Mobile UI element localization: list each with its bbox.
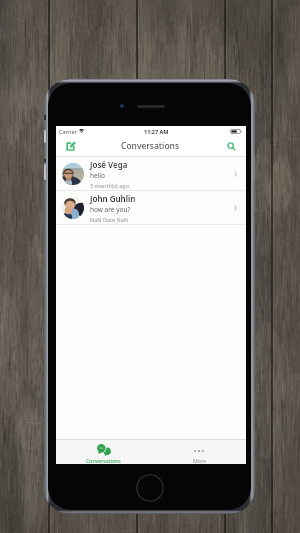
staticText: Carrier — [59, 128, 77, 135]
button[interactable]: Search — [223, 138, 239, 154]
button[interactable]: More — [151, 440, 246, 464]
button[interactable]: José Vega — [56, 157, 246, 191]
staticText: Conversations — [86, 457, 121, 464]
staticText: 3 month(s) ago — [90, 182, 129, 189]
staticText: hello — [90, 171, 105, 180]
staticText: José Vega — [90, 159, 128, 170]
button[interactable]: New conversation — [63, 138, 79, 154]
staticText: how are you? — [90, 205, 131, 214]
button[interactable]: Conversations — [56, 440, 151, 464]
button[interactable]: John Guhlin — [56, 191, 246, 225]
staticText: 11:27 AM — [144, 128, 169, 135]
staticText: Conversations — [121, 140, 180, 152]
staticText: John Guhlin — [90, 193, 136, 204]
staticText: NaN Date NaN — [90, 216, 128, 223]
staticText: More — [193, 457, 206, 464]
